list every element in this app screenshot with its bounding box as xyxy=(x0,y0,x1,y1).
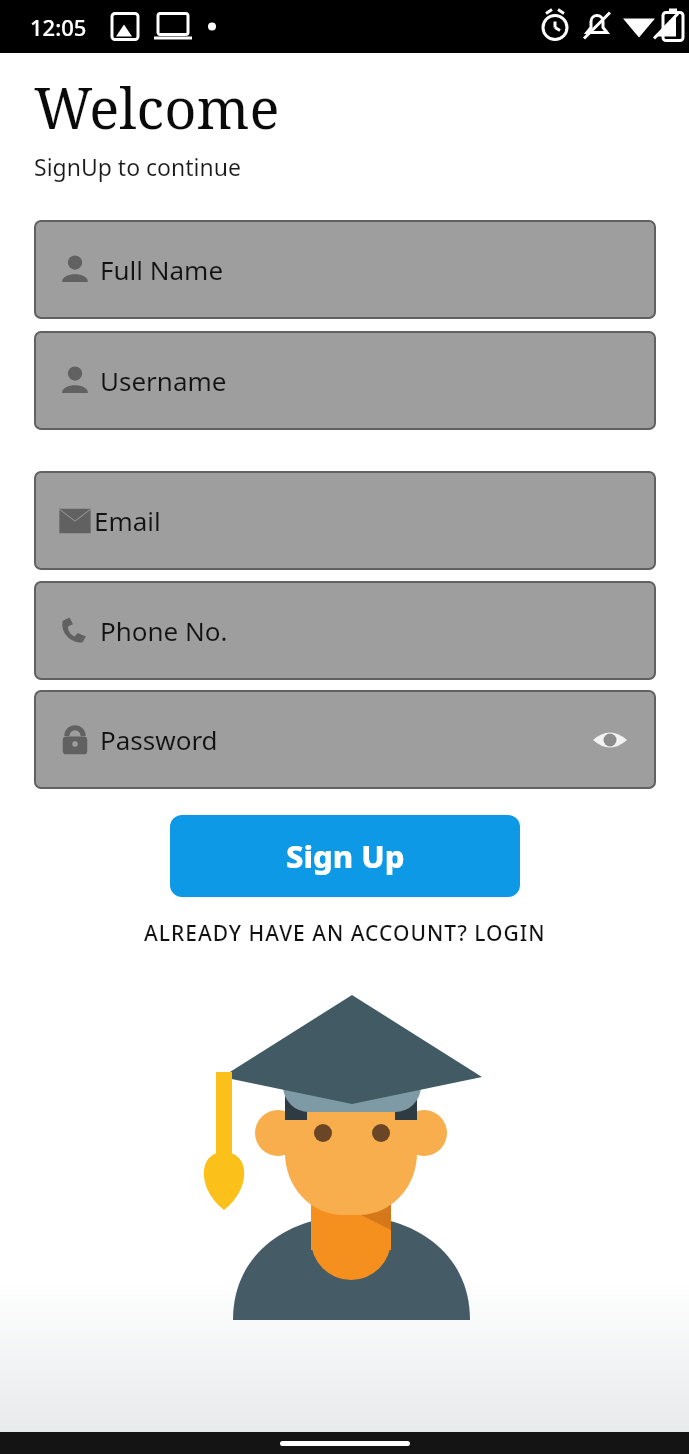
button[interactable]: ALREADY HAVE AN ACCOUNT? LOGIN xyxy=(0,919,689,948)
staticText: Email xyxy=(94,503,161,538)
button[interactable]: Full Name xyxy=(34,220,656,319)
staticText: 12:05 xyxy=(30,12,87,42)
staticText: Full Name xyxy=(100,252,224,287)
staticText: ALREADY HAVE AN ACCOUNT? LOGIN xyxy=(144,919,546,948)
button[interactable]: Sign Up xyxy=(170,815,520,897)
button[interactable]: Show password xyxy=(588,718,632,762)
button[interactable]: Phone No. xyxy=(34,581,656,680)
button[interactable]: Email xyxy=(34,471,656,570)
staticText: Phone No. xyxy=(100,613,228,648)
staticText: Welcome xyxy=(34,69,280,145)
staticText: Sign Up xyxy=(286,835,405,877)
staticText: Username xyxy=(100,363,227,398)
staticText: Password xyxy=(100,722,218,757)
button[interactable]: Password xyxy=(34,690,656,789)
staticText: SignUp to continue xyxy=(34,151,241,182)
button[interactable]: Username xyxy=(34,331,656,430)
